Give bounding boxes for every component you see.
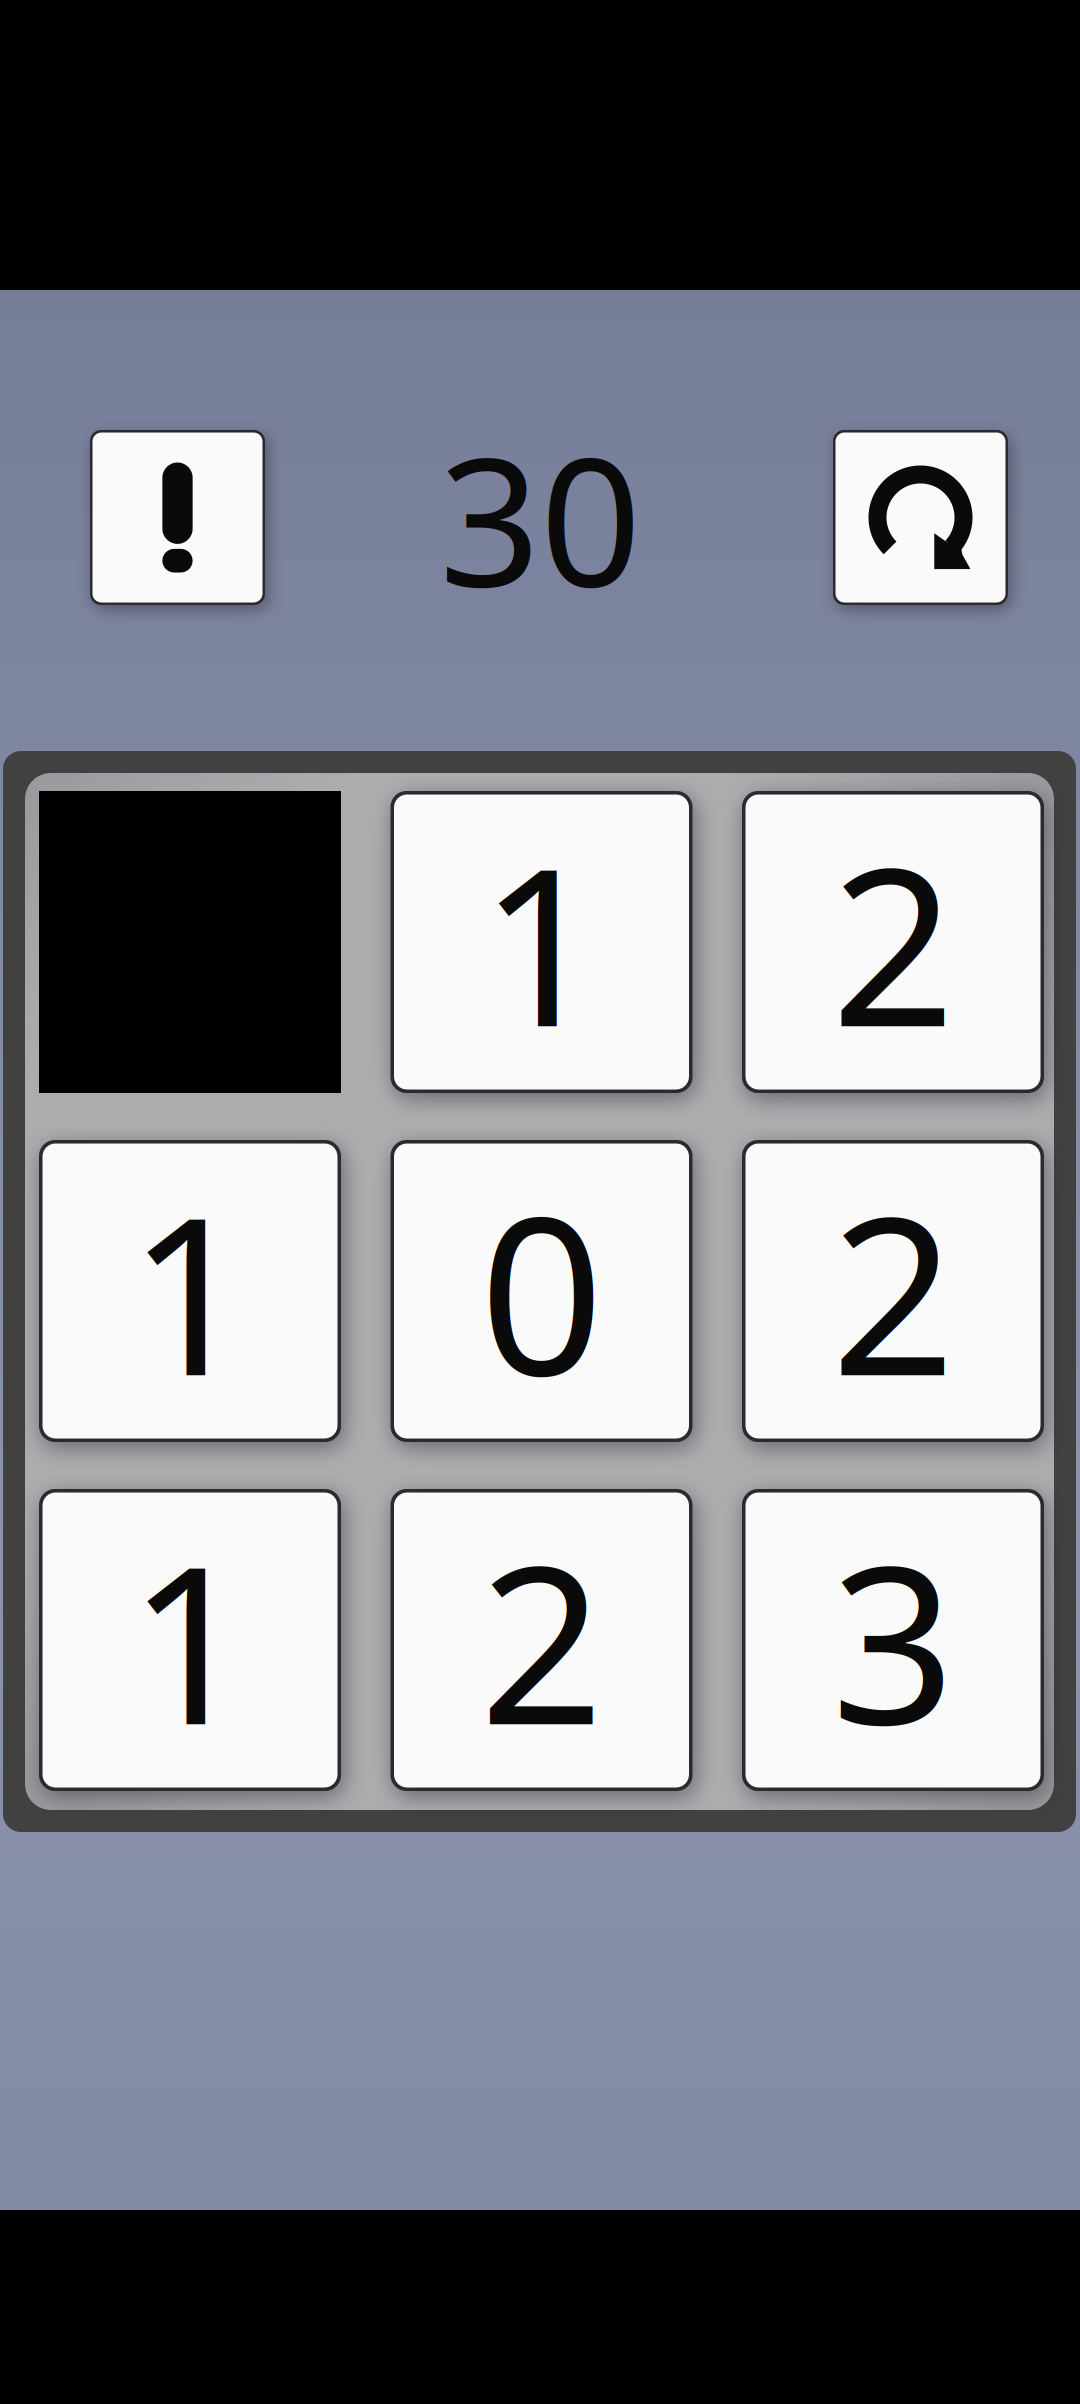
- button[interactable]: 1: [39, 1140, 341, 1442]
- staticText: 2: [831, 1147, 955, 1435]
- button[interactable]: Restart puzzle: [833, 430, 1008, 605]
- button[interactable]: Hint: [90, 430, 265, 605]
- staticText: 0: [479, 1147, 603, 1435]
- button[interactable]: 0: [390, 1140, 692, 1442]
- staticText: 3: [831, 1496, 955, 1784]
- button[interactable]: 1: [390, 791, 692, 1093]
- staticText: 1: [479, 798, 603, 1086]
- button[interactable]: 2: [390, 1489, 692, 1791]
- staticText: 2: [831, 798, 955, 1086]
- button[interactable]: 3: [742, 1489, 1044, 1791]
- staticText: 1: [128, 1147, 252, 1435]
- staticText: 2: [479, 1496, 603, 1784]
- button[interactable]: 2: [742, 791, 1044, 1093]
- staticText: 30: [439, 400, 641, 635]
- button[interactable]: 2: [742, 1140, 1044, 1442]
- button[interactable]: 1: [39, 1489, 341, 1791]
- staticText: 1: [128, 1496, 252, 1784]
